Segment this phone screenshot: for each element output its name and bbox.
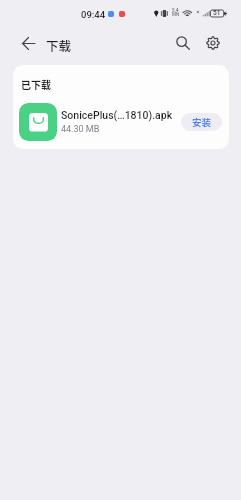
button[interactable]: SonicePlus(…1810).apk	[13, 97, 229, 147]
staticText: 已下载	[21, 77, 51, 91]
button[interactable]: Settings	[199, 29, 227, 57]
button[interactable]: Back	[14, 29, 42, 57]
button[interactable]: Search	[169, 29, 197, 57]
staticText: 下载	[46, 36, 72, 54]
staticText: 5.4	[172, 8, 179, 13]
staticText: 44.30 MB	[61, 124, 100, 135]
staticText: 09:44	[81, 9, 106, 18]
staticText: SonicePlus(…1810).apk	[61, 109, 173, 121]
staticText: 安装	[192, 115, 212, 129]
staticText: MN	[172, 12, 180, 17]
staticText: 51	[213, 9, 221, 16]
button[interactable]: 安装	[181, 113, 222, 131]
